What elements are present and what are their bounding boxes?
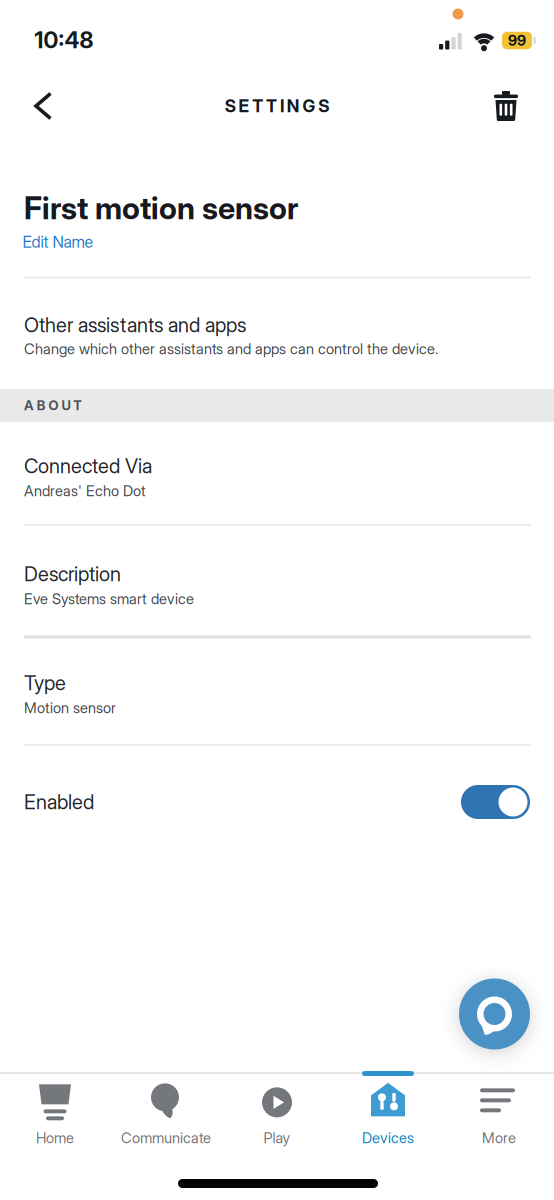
staticText: Andreas' Echo Dot — [24, 482, 146, 500]
button[interactable]: More — [444, 1080, 554, 1148]
button[interactable]: Home — [0, 1080, 110, 1148]
button[interactable]: Alexa — [459, 978, 530, 1049]
staticText: Change which other assistants and apps c… — [24, 340, 438, 358]
staticText: Type — [24, 671, 66, 695]
staticText: Home — [36, 1129, 74, 1147]
staticText: Connected Via — [24, 454, 152, 478]
staticText: More — [482, 1129, 516, 1147]
staticText: Devices — [362, 1129, 414, 1147]
staticText: Other assistants and apps — [24, 313, 246, 337]
button[interactable]: Delete device — [486, 82, 526, 129]
staticText: Eve Systems smart device — [24, 590, 194, 608]
button[interactable]: Back — [24, 81, 64, 130]
staticText: Edit Name — [22, 233, 93, 251]
button[interactable]: Play — [222, 1080, 332, 1148]
staticText: Play — [263, 1129, 290, 1147]
staticText: 10:48 — [34, 27, 93, 53]
staticText: Description — [24, 562, 121, 586]
button[interactable]: Devices — [333, 1080, 443, 1148]
staticText: 99 — [508, 32, 526, 49]
button[interactable]: Enabled — [461, 785, 530, 819]
button[interactable]: Other assistants and apps — [24, 311, 530, 371]
staticText: First motion sensor — [24, 190, 298, 226]
staticText: Motion sensor — [24, 699, 116, 717]
staticText: ABOUT — [24, 398, 81, 413]
button[interactable]: Edit Name — [22, 233, 93, 251]
staticText: Enabled — [24, 790, 94, 814]
staticText: SETTINGS — [225, 96, 329, 116]
button[interactable]: Communicate — [111, 1080, 221, 1148]
staticText: Communicate — [121, 1129, 211, 1147]
